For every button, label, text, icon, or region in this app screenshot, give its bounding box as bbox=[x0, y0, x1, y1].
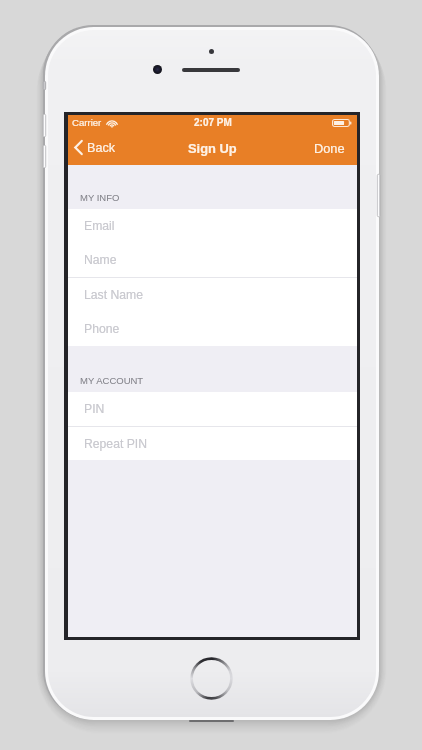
staticText: PIN bbox=[84, 402, 105, 416]
staticText: Phone bbox=[84, 322, 120, 336]
button[interactable]: Home bbox=[190, 657, 233, 700]
staticText: Back bbox=[87, 141, 115, 155]
button[interactable]: Last Name bbox=[68, 278, 357, 312]
staticText: Repeat PIN bbox=[84, 437, 148, 451]
button[interactable]: Repeat PIN bbox=[68, 427, 357, 460]
staticText: Done bbox=[314, 141, 345, 155]
button[interactable]: PIN bbox=[68, 392, 357, 426]
staticText: Last Name bbox=[84, 288, 143, 302]
staticText: Sign Up bbox=[188, 141, 237, 155]
staticText: MY ACCOUNT bbox=[80, 375, 144, 386]
staticText: Name bbox=[84, 253, 117, 267]
button[interactable]: Back bbox=[68, 134, 123, 161]
button[interactable]: Done bbox=[304, 135, 357, 161]
button[interactable]: Phone bbox=[68, 312, 357, 346]
staticText: Email bbox=[84, 219, 115, 233]
staticText: MY INFO bbox=[80, 192, 120, 203]
staticText: 2:07 PM bbox=[194, 117, 232, 128]
button[interactable]: Name bbox=[68, 243, 357, 277]
button[interactable]: Email bbox=[68, 209, 357, 243]
staticText: Carrier bbox=[72, 117, 102, 128]
